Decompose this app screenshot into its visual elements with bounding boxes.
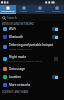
button[interactable]: Wi-Fi [0, 25, 64, 33]
staticText: Mobile Hotspot is off [9, 48, 32, 51]
staticText: General [52, 10, 61, 13]
button[interactable]: Flight mode [0, 53, 64, 65]
staticText: More networks [9, 83, 31, 87]
button[interactable]: General [48, 5, 64, 13]
button[interactable]: Wi-Fi switch [52, 27, 58, 31]
staticText: Location [9, 75, 22, 79]
button[interactable]: Device [16, 5, 32, 13]
button[interactable]: Location [0, 73, 64, 81]
staticText: Data usage [9, 67, 25, 71]
button[interactable]: Data usage [0, 65, 64, 73]
staticText: WIRELESS AND NETWORKS [2, 22, 34, 25]
button[interactable]: Search [0, 14, 64, 21]
button[interactable]: Connections [0, 5, 16, 13]
button[interactable]: Bluetooth switch [52, 35, 58, 39]
button[interactable]: Tethering and portable hotspot [0, 41, 64, 53]
staticText: Search [7, 16, 17, 20]
staticText: Disable calling and messaging [9, 60, 42, 63]
staticText: Controls [35, 10, 45, 13]
staticText: Wi-Fi [9, 27, 16, 31]
staticText: Connections [1, 10, 15, 13]
button[interactable]: More networks [0, 81, 64, 89]
staticText: Bluetooth [9, 35, 23, 39]
staticText: Device [20, 10, 28, 13]
staticText: Flight mode [9, 55, 26, 59]
staticText: CONNECT AND SHARE [2, 90, 29, 93]
button[interactable]: Bluetooth [0, 33, 64, 41]
button[interactable]: Location switch [52, 75, 58, 79]
staticText: Tethering and portable hotspot [9, 43, 54, 47]
button[interactable]: Controls [32, 5, 48, 13]
